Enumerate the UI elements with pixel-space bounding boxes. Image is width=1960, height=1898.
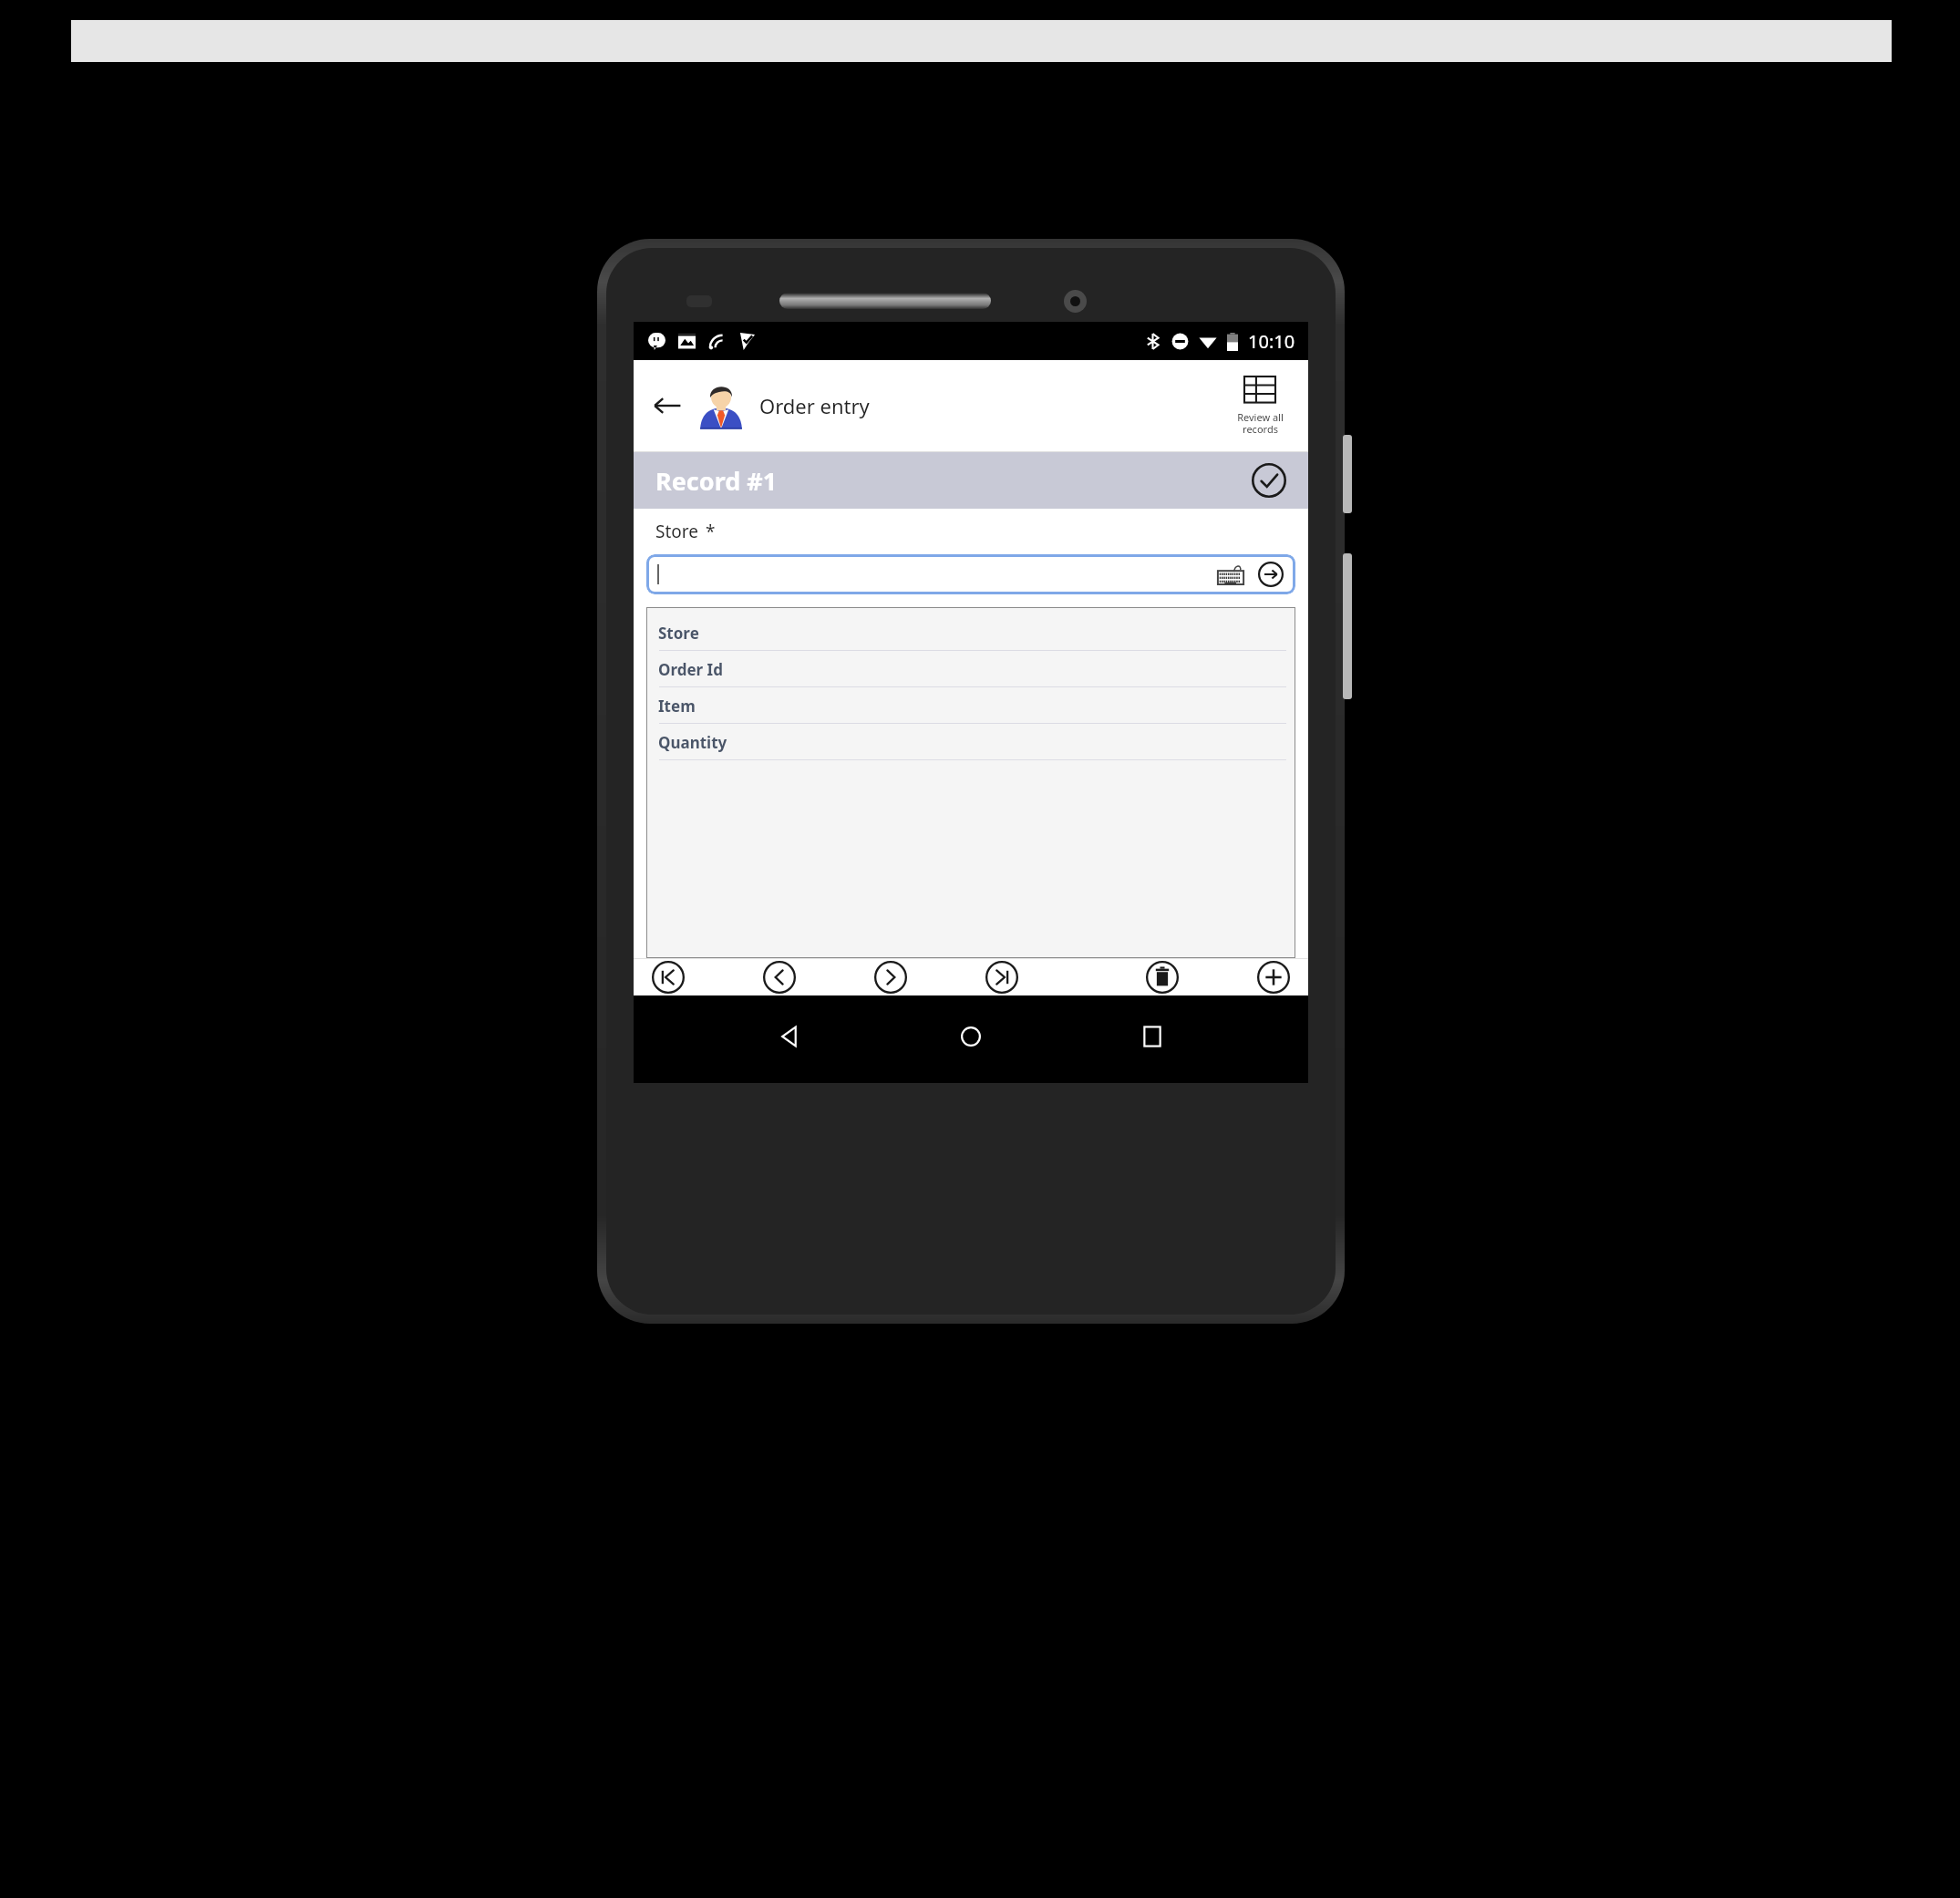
button[interactable]: Submit (1257, 561, 1284, 588)
staticText: Item (658, 696, 696, 717)
button[interactable]: Store (646, 614, 1295, 651)
staticText: 10:10 (1248, 329, 1295, 354)
button[interactable]: Keyboard (646, 554, 1295, 594)
button[interactable]: Back (646, 385, 688, 427)
button[interactable]: Add record (1253, 959, 1294, 995)
staticText: Review all records (1237, 410, 1284, 436)
button[interactable]: Item (646, 687, 1295, 724)
staticText: * (706, 520, 716, 543)
button[interactable]: Recent apps (1128, 1012, 1177, 1061)
button[interactable]: Previous record (759, 959, 799, 995)
button[interactable]: First record (648, 959, 688, 995)
button[interactable]: Order Id (646, 651, 1295, 687)
button[interactable]: Confirm record (1250, 461, 1288, 500)
staticText: Store (655, 520, 698, 543)
staticText: Store (658, 623, 699, 644)
staticText: Order Id (658, 659, 723, 680)
button[interactable]: Delete record (1142, 959, 1182, 995)
button[interactable]: Record #1 (634, 452, 1308, 509)
button[interactable]: Home (946, 1012, 995, 1061)
button[interactable]: Keyboard (1215, 562, 1246, 586)
button[interactable]: Back (766, 1012, 815, 1061)
button[interactable]: Review all records (1226, 377, 1294, 436)
staticText: Order entry (759, 392, 870, 419)
staticText: Record #1 (655, 464, 778, 498)
button[interactable]: Quantity (646, 724, 1295, 760)
button[interactable]: Next record (871, 959, 911, 995)
staticText: Quantity (658, 732, 727, 753)
button[interactable]: Last record (982, 959, 1022, 995)
